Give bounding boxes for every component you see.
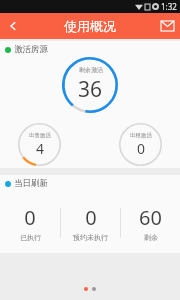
staticText: 已执行 [20, 233, 41, 242]
button[interactable]: Page 2 [92, 287, 96, 291]
staticText: 60 [139, 204, 162, 231]
staticText: 出租激活 [130, 132, 152, 139]
staticText: 预约未执行 [73, 233, 108, 242]
staticText: 0 [85, 204, 97, 231]
staticText: 0 [24, 204, 36, 231]
staticText: 剩余 [144, 233, 158, 242]
staticText: 激活房源 [14, 44, 48, 55]
button[interactable]: Page 1 [84, 287, 88, 291]
staticText: 4 [36, 139, 45, 158]
staticText: 剩余激活 [79, 66, 103, 74]
button[interactable]: 60 [121, 204, 180, 242]
staticText: 出售激活 [29, 132, 51, 139]
staticText: 1:32 [161, 1, 177, 12]
button[interactable]: Back [0, 13, 26, 39]
staticText: 0 [137, 139, 146, 158]
button[interactable]: Messages [154, 13, 180, 39]
button[interactable]: 0 [61, 204, 120, 242]
button[interactable]: 0 [0, 204, 60, 242]
staticText: 使用概况 [64, 18, 116, 34]
staticText: 36 [78, 75, 103, 104]
staticText: 当日刷新 [14, 178, 48, 189]
